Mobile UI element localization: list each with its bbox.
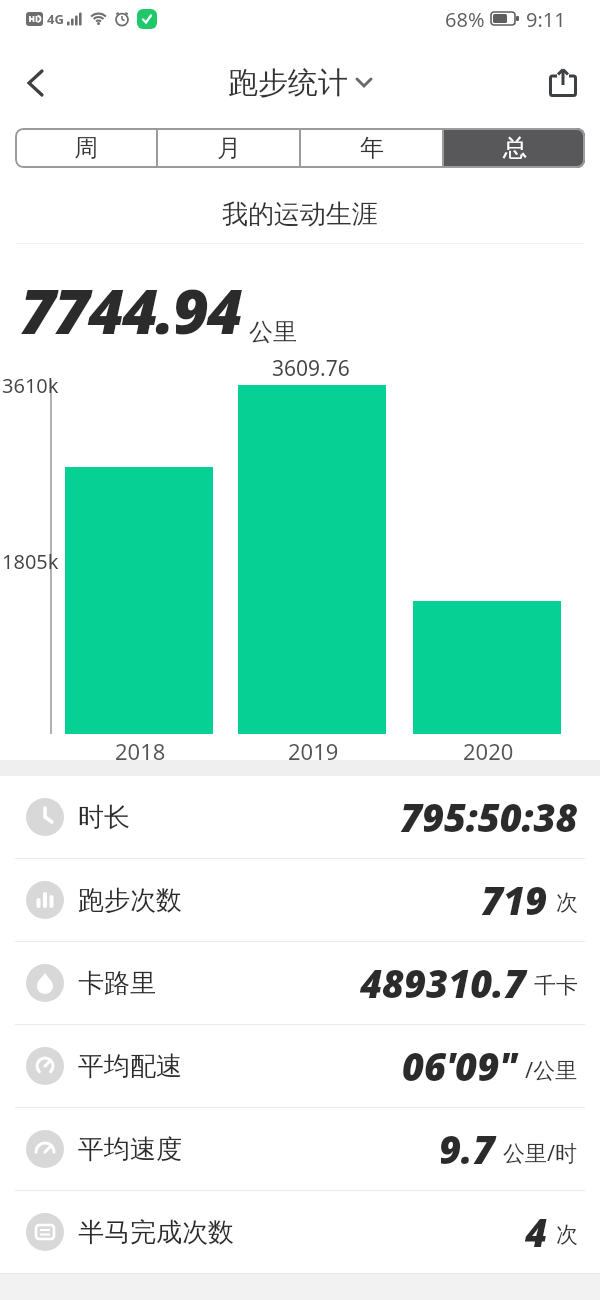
button[interactable]: 平均配速 (0, 1025, 600, 1107)
staticText: /公里 (525, 1054, 578, 1084)
staticText: 9:11 (526, 6, 566, 33)
staticText: 3610k (2, 372, 59, 399)
staticText: 跑步统计 (228, 64, 348, 102)
staticText: 719 (481, 874, 548, 926)
button[interactable] (542, 62, 584, 104)
staticText: 2019 (288, 736, 339, 766)
staticText: 06'09" (402, 1040, 517, 1092)
button[interactable]: 周 (15, 128, 156, 168)
staticText: 1805k (2, 548, 59, 575)
staticText: 时长 (78, 801, 130, 834)
staticText: 月 (217, 133, 241, 163)
staticText: 我的运动生涯 (222, 198, 378, 231)
staticText: 总 (503, 133, 527, 163)
staticText: 2018 (115, 736, 166, 766)
staticText: 平均速度 (78, 1133, 182, 1166)
button[interactable]: 总 (444, 128, 585, 168)
staticText: 周 (74, 133, 98, 163)
staticText: 489310.7 (360, 957, 526, 1009)
button[interactable]: 跑步次数 (0, 859, 600, 941)
staticText: 7744.94 (20, 268, 241, 352)
staticText: 公里 (249, 317, 297, 347)
staticText: 平均配速 (78, 1050, 182, 1083)
staticText: 次 (556, 1221, 578, 1249)
staticText: 次 (556, 889, 578, 917)
staticText: 千卡 (534, 972, 578, 1000)
staticText: 4 (525, 1206, 548, 1258)
staticText: 68% (445, 6, 485, 33)
button[interactable]: 卡路里 (0, 942, 600, 1024)
button[interactable]: 平均速度 (0, 1108, 600, 1190)
button[interactable]: 时长 (0, 776, 600, 858)
button[interactable]: 月 (158, 128, 299, 168)
staticText: 9.7 (439, 1123, 495, 1175)
button[interactable]: 跑步统计 (228, 64, 372, 102)
button[interactable]: 年 (301, 128, 442, 168)
staticText: 795:50:38 (400, 791, 578, 843)
button[interactable]: 半马完成次数 (0, 1191, 600, 1273)
staticText: 公里/时 (503, 1137, 578, 1167)
staticText: 年 (360, 133, 384, 163)
staticText: 3609.76 (272, 354, 350, 383)
staticText: 半马完成次数 (78, 1216, 234, 1249)
button[interactable] (16, 63, 56, 103)
staticText: 2020 (463, 736, 514, 766)
staticText: 卡路里 (78, 967, 156, 1000)
staticText: 跑步次数 (78, 884, 182, 917)
staticText: 4G (47, 10, 64, 28)
